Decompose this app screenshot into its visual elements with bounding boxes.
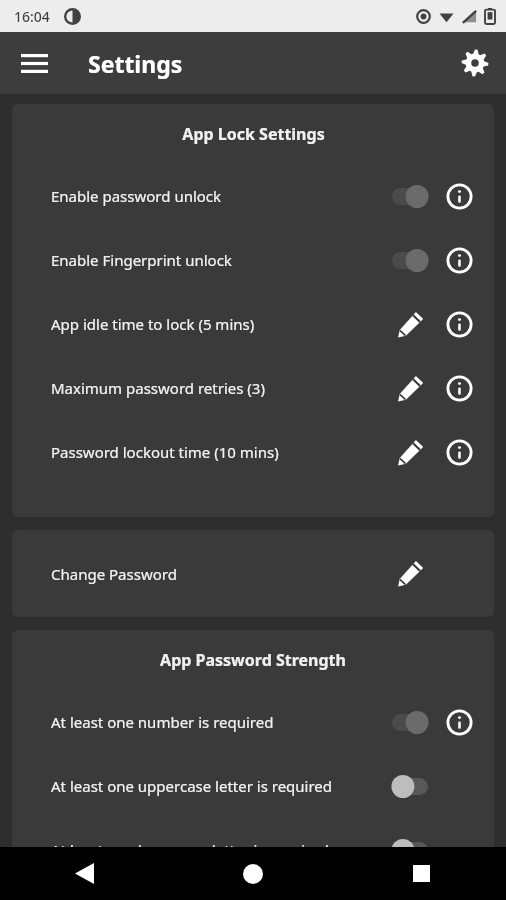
staticText: 16:04 [14, 7, 50, 26]
button[interactable]: Toggle At least one uppercase letter is … [382, 754, 438, 818]
button[interactable]: Home [168, 847, 337, 900]
button[interactable]: Toggle At least one lowercase letter is … [382, 818, 438, 882]
button[interactable]: Toggle At least one number is required [382, 690, 438, 754]
button[interactable]: Maximum password retries (3) [12, 356, 494, 420]
button[interactable]: Info about App idle time to lock (5 mins… [438, 292, 480, 356]
staticText: Enable password unlock [51, 186, 382, 206]
staticText: Maximum password retries (3) [51, 378, 382, 398]
button[interactable]: At least one number is required [12, 690, 494, 754]
staticText: Settings [88, 48, 183, 79]
staticText: App Lock Settings [182, 123, 325, 145]
button[interactable]: Info about Maximum password retries (3) [438, 356, 480, 420]
button[interactable]: Password lockout time (10 mins) [12, 420, 494, 484]
button[interactable]: Toggle Enable Fingerprint unlock [382, 228, 438, 292]
button[interactable]: Toggle Enable password unlock [382, 164, 438, 228]
button[interactable]: At least one uppercase letter is require… [12, 754, 494, 818]
button[interactable]: Edit Change Password [382, 530, 438, 617]
button[interactable]: Settings [452, 40, 498, 86]
button[interactable]: Info about At least one number is requir… [438, 690, 480, 754]
button[interactable]: Open navigation menu [11, 40, 57, 86]
button[interactable]: Edit Password lockout time (10 mins) [382, 420, 438, 484]
button[interactable]: At least one lowercase letter is require… [12, 818, 494, 882]
button[interactable]: Info about Enable Fingerprint unlock [438, 228, 480, 292]
staticText: Enable Fingerprint unlock [51, 250, 382, 270]
staticText: At least one lowercase letter is require… [51, 840, 382, 860]
button[interactable]: Edit Maximum password retries (3) [382, 356, 438, 420]
staticText: App idle time to lock (5 mins) [51, 314, 382, 334]
button[interactable]: Info about Enable password unlock [438, 164, 480, 228]
button[interactable]: Info about Password lockout time (10 min… [438, 420, 480, 484]
staticText: At least one uppercase letter is require… [51, 776, 382, 796]
button[interactable]: Enable Fingerprint unlock [12, 228, 494, 292]
staticText: At least one number is required [51, 712, 382, 732]
staticText: Password lockout time (10 mins) [51, 442, 382, 462]
button[interactable]: Edit App idle time to lock (5 mins) [382, 292, 438, 356]
button[interactable]: App idle time to lock (5 mins) [12, 292, 494, 356]
button[interactable]: Recent apps [337, 847, 506, 900]
staticText: App Password Strength [160, 649, 346, 671]
button[interactable]: Back [0, 847, 168, 900]
staticText: Change Password [51, 564, 382, 584]
button[interactable]: Change Password [12, 530, 494, 617]
button[interactable]: Enable password unlock [12, 164, 494, 228]
